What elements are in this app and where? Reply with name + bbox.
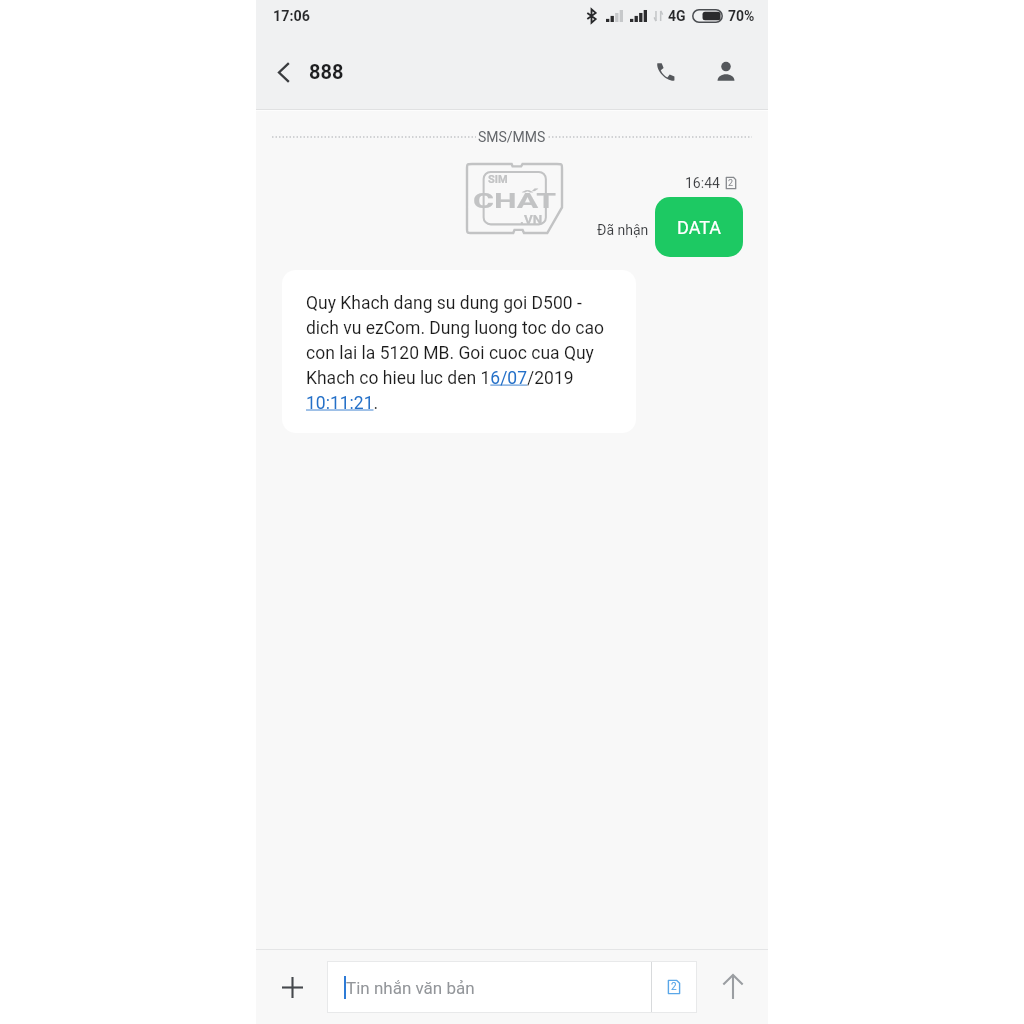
staticText: Tin nhắn văn bản xyxy=(346,978,475,998)
staticText: 4G xyxy=(668,8,686,24)
button[interactable]: DATA xyxy=(655,197,743,257)
button[interactable]: Send xyxy=(697,950,768,1024)
staticText: 2 xyxy=(728,178,734,189)
button[interactable]: Tin nhắn văn bản xyxy=(328,962,696,1012)
staticText: CHẤT xyxy=(473,189,557,214)
button[interactable]: Back xyxy=(256,41,300,101)
button[interactable]: Contact details xyxy=(698,41,754,101)
button[interactable]: Quy Khach dang su dung goi D500 - dich v… xyxy=(282,270,636,433)
staticText: 16:44 xyxy=(685,175,720,191)
staticText: SMS/MMS xyxy=(478,129,546,145)
staticText: DATA xyxy=(677,217,722,238)
staticText: SIM xyxy=(488,173,508,186)
staticText: 17:06 xyxy=(273,8,310,25)
button[interactable]: Call xyxy=(637,41,693,101)
staticText: Đã nhận xyxy=(597,222,649,238)
staticText: .VN xyxy=(520,211,543,227)
staticText: 2 xyxy=(671,981,677,993)
staticText: Quy Khach dang su dung goi D500 - dich v… xyxy=(306,293,604,413)
button[interactable]: SIM 2 xyxy=(652,962,696,1012)
staticText: 888 xyxy=(309,60,344,83)
staticText: 70% xyxy=(728,8,755,24)
button[interactable]: Add attachment xyxy=(266,961,318,1013)
